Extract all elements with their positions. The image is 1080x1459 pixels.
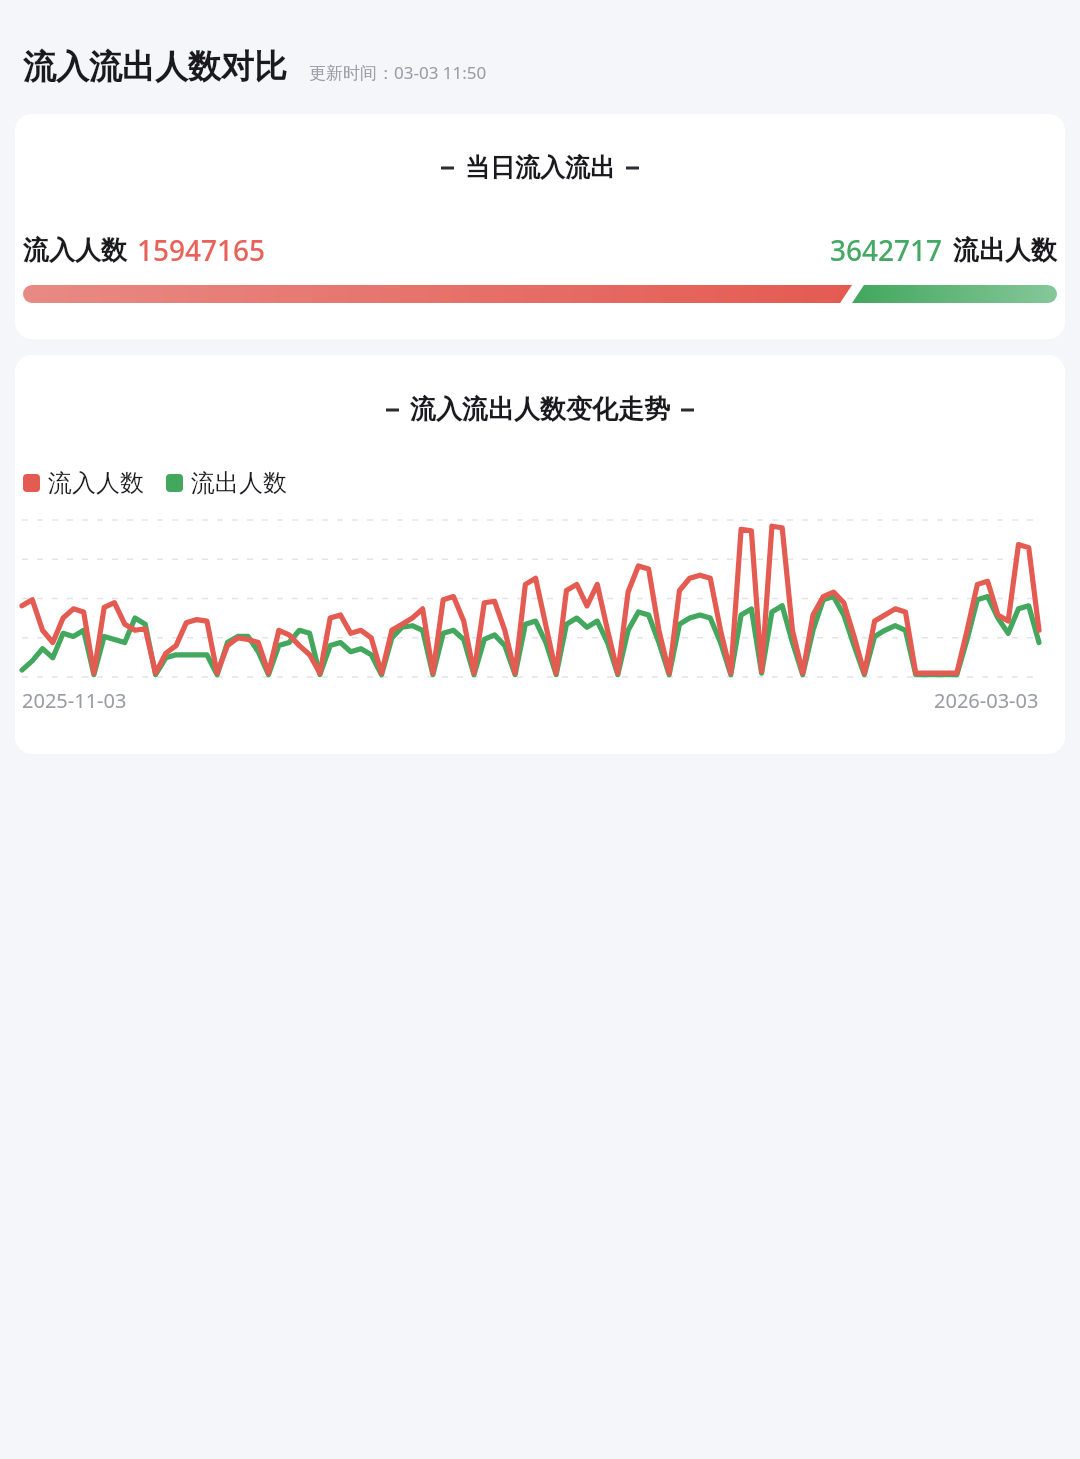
staticText: 3642717 bbox=[830, 231, 943, 269]
staticText: 流入流出人数变化走势 bbox=[410, 393, 670, 426]
staticText: 流入人数 bbox=[23, 234, 127, 267]
staticText: 当日流入流出 bbox=[465, 152, 615, 183]
staticText: 流入流出人数对比 bbox=[23, 46, 287, 88]
staticText: 流出人数 bbox=[191, 468, 287, 498]
staticText: 15947165 bbox=[137, 231, 266, 269]
button[interactable]: 流出人数 bbox=[166, 468, 287, 498]
staticText: 2025-11-03 bbox=[22, 687, 127, 714]
button[interactable]: 流入人数 bbox=[23, 468, 144, 498]
staticText: 更新时间：03-03 11:50 bbox=[309, 61, 487, 84]
button[interactable]: 流入流出人数变化走势 bbox=[15, 355, 1065, 754]
button[interactable]: 当日流入流出 bbox=[15, 114, 1065, 339]
staticText: 2026-03-03 bbox=[934, 687, 1039, 714]
staticText: 流入人数 bbox=[48, 468, 144, 498]
other: 流入流出人数变化走势折线图 bbox=[22, 520, 1039, 677]
staticText: 流出人数 bbox=[953, 234, 1057, 267]
